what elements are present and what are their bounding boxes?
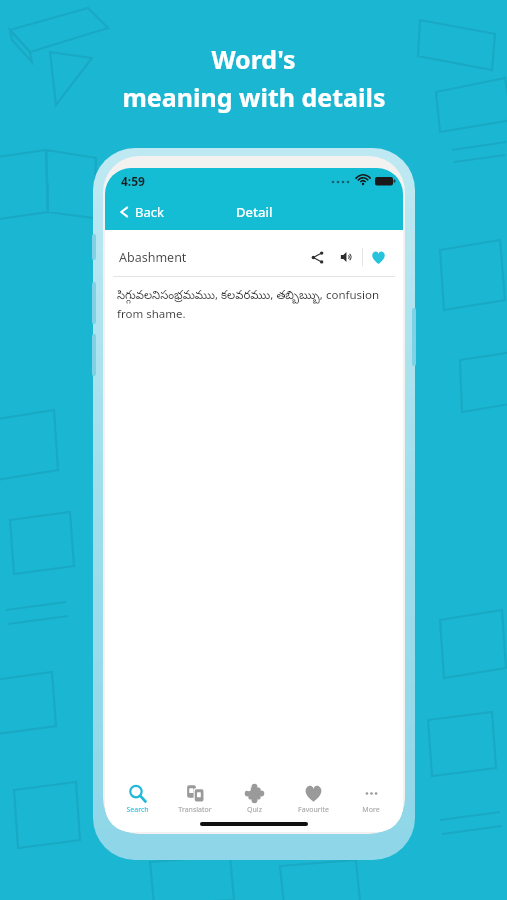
button[interactable]: Pronounce [334, 244, 360, 270]
staticText: Back [135, 203, 164, 221]
staticText: More [362, 805, 380, 815]
button[interactable]: Favourite [365, 244, 391, 270]
staticText: Quiz [247, 805, 262, 815]
button[interactable]: Back [113, 199, 168, 225]
staticText: 4:59 [121, 173, 145, 189]
button[interactable]: Share [304, 244, 330, 270]
button[interactable]: More [344, 782, 398, 817]
staticText: meaning with details [122, 80, 386, 114]
button[interactable]: Search [110, 782, 164, 817]
staticText: Favourite [298, 805, 329, 815]
staticText: Translator [178, 805, 212, 815]
staticText: Search [126, 805, 149, 815]
staticText: Word's [211, 42, 296, 76]
staticText: Abashment [119, 249, 187, 266]
button[interactable]: Favourite [286, 782, 340, 817]
staticText: Detail [236, 203, 273, 221]
staticText: సిగ్గువలనిసంభ్రమముు, కలవరముు, తబ్బిబ్బుు… [117, 287, 391, 321]
button[interactable]: Quiz [227, 782, 281, 817]
button[interactable]: Translator [168, 782, 222, 817]
